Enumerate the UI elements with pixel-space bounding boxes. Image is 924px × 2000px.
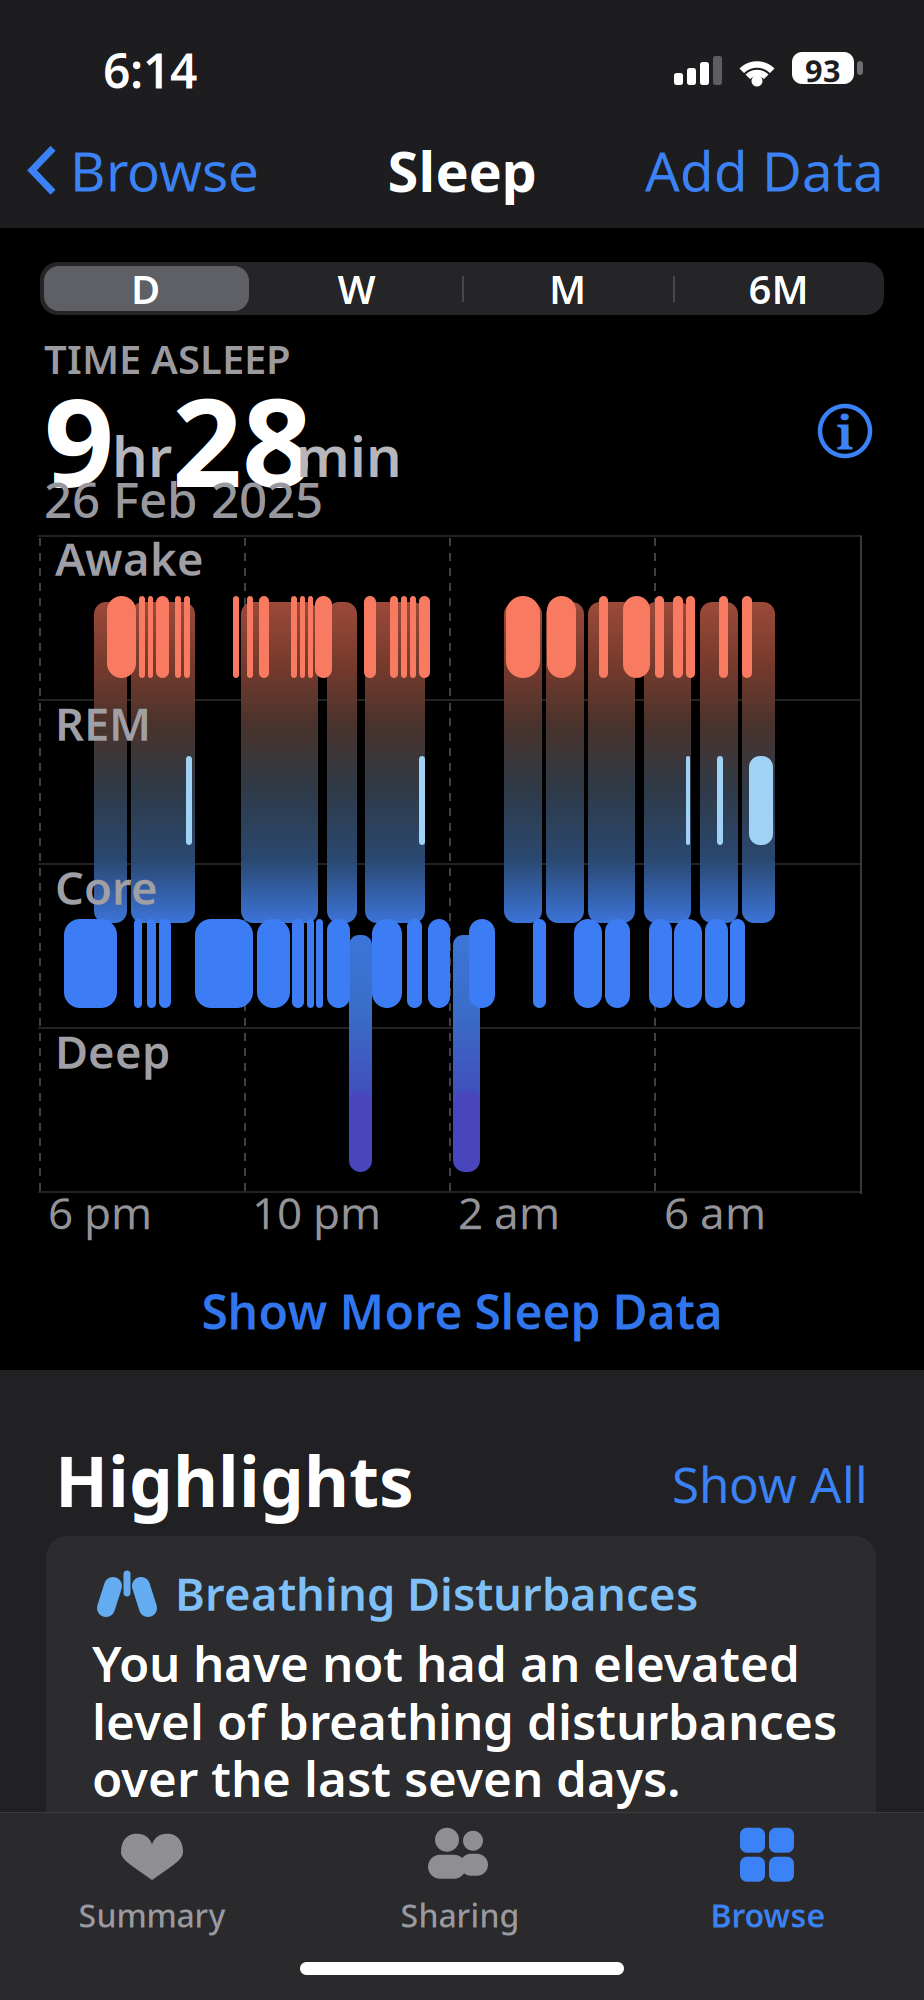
staticText: Show More Sleep Data xyxy=(201,1279,722,1343)
button[interactable]: D xyxy=(40,262,251,315)
staticText: 6M xyxy=(748,262,808,315)
staticText: 2 am xyxy=(458,1183,560,1241)
staticText: Sleep xyxy=(387,133,536,207)
staticText: W xyxy=(337,262,375,315)
button[interactable]: 6M xyxy=(673,262,884,315)
staticText: D xyxy=(131,262,160,315)
staticText: Core xyxy=(55,857,158,917)
button[interactable]: Show All xyxy=(672,1451,868,1516)
staticText: Highlights xyxy=(55,1434,414,1526)
staticText: Summary xyxy=(78,1894,225,1936)
staticText: 9 xyxy=(44,358,114,521)
button[interactable]: Browse xyxy=(28,134,259,207)
staticText: Add Data xyxy=(645,134,884,207)
button[interactable]: Add Data xyxy=(645,134,884,207)
staticText: 6 pm xyxy=(48,1183,152,1241)
button[interactable]: Show More Sleep Data xyxy=(201,1279,722,1343)
staticText: Breathing Disturbances xyxy=(175,1563,698,1623)
staticText: 28 xyxy=(172,358,312,521)
staticText: M xyxy=(549,262,586,315)
button[interactable]: Sharing xyxy=(340,1822,580,1942)
button[interactable]: i xyxy=(818,404,872,458)
staticText: You have not had an elevated xyxy=(92,1630,800,1695)
staticText: Browse xyxy=(710,1894,825,1936)
staticText: Deep xyxy=(55,1021,170,1081)
staticText: Show All xyxy=(672,1451,868,1516)
button[interactable]: Browse xyxy=(648,1822,888,1942)
staticText: 10 pm xyxy=(252,1183,381,1241)
staticText: TIME ASLEEP xyxy=(44,332,291,385)
staticText: Awake xyxy=(55,528,204,588)
staticText: over the last seven days. xyxy=(92,1745,681,1810)
staticText: 93 xyxy=(805,50,841,91)
button[interactable]: Breathing Disturbances xyxy=(46,1536,876,1896)
staticText: Sharing xyxy=(400,1894,519,1936)
staticText: i xyxy=(836,398,853,464)
staticText: level of breathing disturbances xyxy=(92,1688,837,1753)
button[interactable]: Summary xyxy=(32,1822,272,1942)
staticText: Browse xyxy=(70,134,259,207)
staticText: hr xyxy=(112,418,172,492)
button[interactable]: W xyxy=(251,262,462,315)
staticText: min xyxy=(296,418,402,492)
staticText: 26 Feb 2025 xyxy=(44,466,323,531)
staticText: 6 am xyxy=(664,1183,766,1241)
staticText: 6:14 xyxy=(103,38,197,102)
button[interactable]: M xyxy=(462,262,673,315)
staticText: REM xyxy=(55,693,151,753)
